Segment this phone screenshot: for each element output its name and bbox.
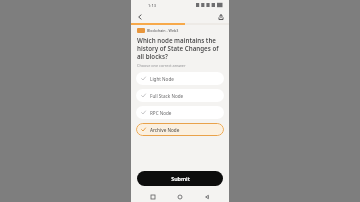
button[interactable]: Back [202,192,212,202]
button[interactable]: Home [175,192,185,202]
button[interactable]: Light Node [136,72,224,85]
staticText: Choose one correct answer [137,63,186,68]
button[interactable]: RPC Node [136,106,224,119]
button[interactable]: Recent apps [148,192,158,202]
staticText: Archive Node [150,127,180,133]
staticText: Which node maintains the history of Stat… [137,36,223,60]
staticText: RPC Node [150,110,172,116]
staticText: Full Stack Node [150,93,184,99]
staticText: 1:13 [148,3,156,8]
staticText: Light Node [150,76,174,82]
button[interactable]: Submit [137,171,223,186]
button[interactable]: Back [134,11,145,22]
staticText: Submit [171,175,190,182]
button[interactable]: Full Stack Node [136,89,224,102]
staticText: Blockchain - Web3 [147,28,179,33]
button[interactable]: Share [215,11,226,22]
button[interactable]: Archive Node [136,123,224,136]
